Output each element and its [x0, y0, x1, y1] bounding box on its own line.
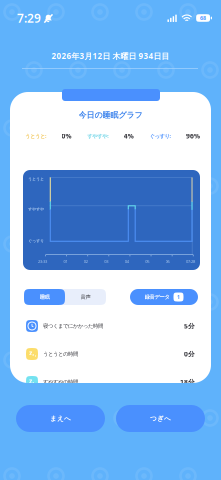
- staticText: 5分: [184, 322, 195, 330]
- staticText: 睡眠: [39, 294, 49, 300]
- staticText: すやすや: [28, 207, 44, 211]
- staticText: 07:28: [186, 259, 195, 264]
- staticText: z: [29, 376, 32, 385]
- staticText: 05: [145, 259, 149, 264]
- staticText: z: [32, 352, 34, 357]
- staticText: 23:33: [38, 259, 47, 264]
- button[interactable]: 録音データ: [130, 289, 198, 305]
- staticText: すやすや:: [87, 132, 108, 140]
- button[interactable]: 睡眠: [24, 289, 106, 305]
- staticText: 18分: [180, 378, 195, 386]
- staticText: 4%: [124, 132, 134, 140]
- button[interactable]: 寝つくまでにかかった時間: [10, 312, 211, 340]
- staticText: 2026年3月12日 木曜日 934日目: [51, 51, 169, 61]
- button[interactable]: まえへ: [16, 405, 105, 432]
- staticText: 04: [125, 259, 129, 264]
- staticText: 0分: [184, 350, 195, 358]
- staticText: 0%: [62, 132, 72, 140]
- staticText: 録音データ: [144, 294, 169, 300]
- button[interactable]: z: [10, 340, 211, 368]
- staticText: ぐっすり:: [149, 132, 170, 140]
- staticText: まえへ: [50, 414, 71, 423]
- staticText: 06: [166, 259, 170, 264]
- staticText: 音声: [80, 294, 90, 300]
- staticText: 68: [200, 14, 206, 22]
- staticText: 7:29: [17, 10, 41, 26]
- staticText: うとうとの時間: [43, 351, 78, 357]
- staticText: 96%: [186, 132, 200, 140]
- staticText: うとうと:: [25, 132, 46, 140]
- staticText: z: [35, 382, 36, 386]
- button[interactable]: つぎへ: [116, 405, 205, 432]
- staticText: すやすやの時間: [43, 379, 78, 385]
- staticText: 1: [177, 293, 180, 301]
- staticText: つぎへ: [150, 414, 171, 423]
- button[interactable]: z: [10, 368, 211, 396]
- staticText: z: [32, 380, 34, 385]
- staticText: 今日の睡眠グラフ: [78, 110, 142, 120]
- staticText: 寝つくまでにかかった時間: [43, 323, 103, 329]
- staticText: うとうと: [28, 177, 44, 182]
- staticText: 02: [84, 259, 88, 264]
- staticText: ぐっすり: [28, 238, 44, 243]
- staticText: 01: [63, 259, 67, 264]
- staticText: z: [29, 348, 32, 357]
- staticText: 03: [104, 259, 108, 264]
- staticText: z: [35, 354, 36, 358]
